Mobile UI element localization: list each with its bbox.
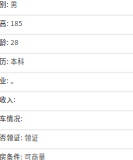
button[interactable]: 性别:	[0, 0, 133, 16]
staticText: 身高:	[0, 18, 10, 28]
staticText: 年龄:	[0, 37, 10, 47]
staticText: 职业:	[0, 75, 10, 85]
button[interactable]: 购房条件:	[0, 149, 133, 160]
button[interactable]: 购车情况:	[0, 111, 133, 130]
staticText: 购房条件:	[0, 152, 24, 160]
button[interactable]: 年龄:	[0, 35, 133, 54]
staticText: 。	[10, 75, 17, 85]
staticText: 男	[10, 0, 17, 9]
button[interactable]: 职业:	[0, 73, 133, 92]
button[interactable]: 学历:	[0, 54, 133, 73]
staticText: 学历:	[0, 56, 10, 66]
button[interactable]: 是否领证:	[0, 130, 133, 149]
button[interactable]: 年收入:	[0, 92, 133, 111]
staticText: 可商量	[24, 152, 45, 160]
staticText: 购车情况:	[0, 114, 24, 123]
staticText: 本科	[10, 56, 24, 66]
staticText: 年收入:	[0, 94, 17, 104]
staticText: 28	[10, 37, 18, 47]
staticText: 185	[10, 18, 22, 28]
staticText: 性别:	[0, 0, 10, 9]
staticText: 领证	[24, 133, 38, 142]
button[interactable]: 身高:	[0, 16, 133, 35]
staticText: 是否领证:	[0, 133, 24, 142]
